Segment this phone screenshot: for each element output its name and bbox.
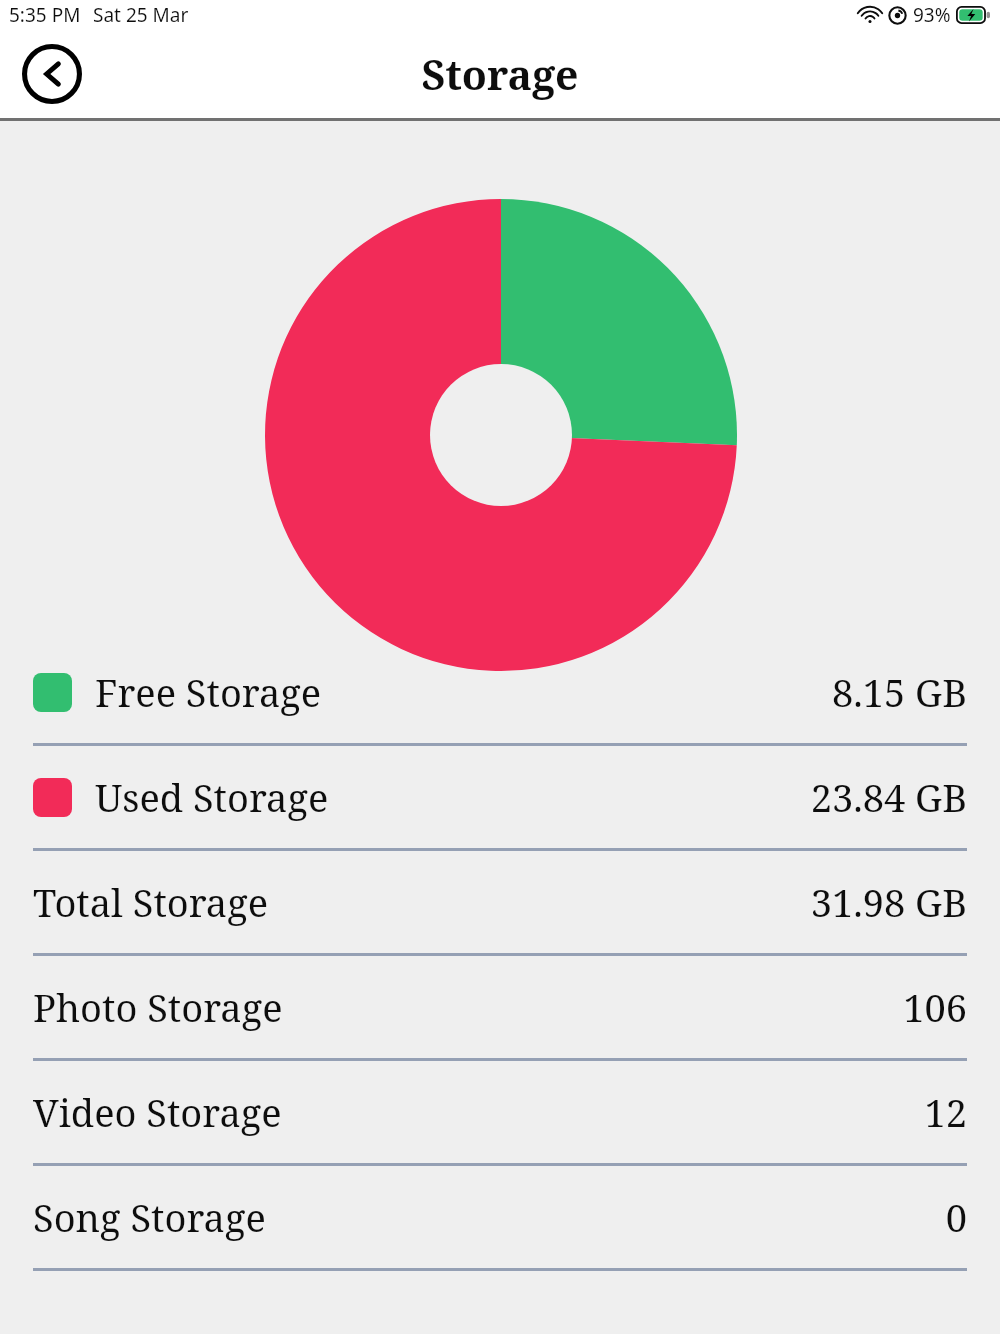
staticText: 31.98 GB bbox=[810, 876, 967, 928]
button[interactable]: Photo Storage bbox=[0, 956, 1000, 1061]
staticText: 8.15 GB bbox=[831, 666, 967, 718]
staticText: 12 bbox=[924, 1086, 967, 1138]
button[interactable]: Back bbox=[21, 43, 83, 105]
staticText: Used Storage bbox=[95, 771, 329, 823]
staticText: Storage bbox=[0, 46, 1000, 102]
staticText: 23.84 GB bbox=[810, 771, 967, 823]
staticText: 93% bbox=[913, 2, 951, 28]
button[interactable]: Video Storage bbox=[0, 1061, 1000, 1166]
button[interactable]: Total Storage bbox=[0, 851, 1000, 956]
button[interactable]: Song Storage bbox=[0, 1166, 1000, 1271]
staticText: Video Storage bbox=[33, 1086, 282, 1138]
staticText: Song Storage bbox=[33, 1191, 266, 1243]
staticText: Photo Storage bbox=[33, 981, 283, 1033]
staticText: 5:35 PM bbox=[9, 2, 81, 28]
staticText: Total Storage bbox=[33, 876, 269, 928]
staticText: Free Storage bbox=[95, 666, 322, 718]
button[interactable]: Free Storage bbox=[0, 641, 1000, 746]
staticText: Sat 25 Mar bbox=[93, 2, 189, 28]
staticText: 0 bbox=[945, 1191, 967, 1243]
staticText: 106 bbox=[903, 981, 967, 1033]
button[interactable]: Used Storage bbox=[0, 746, 1000, 851]
